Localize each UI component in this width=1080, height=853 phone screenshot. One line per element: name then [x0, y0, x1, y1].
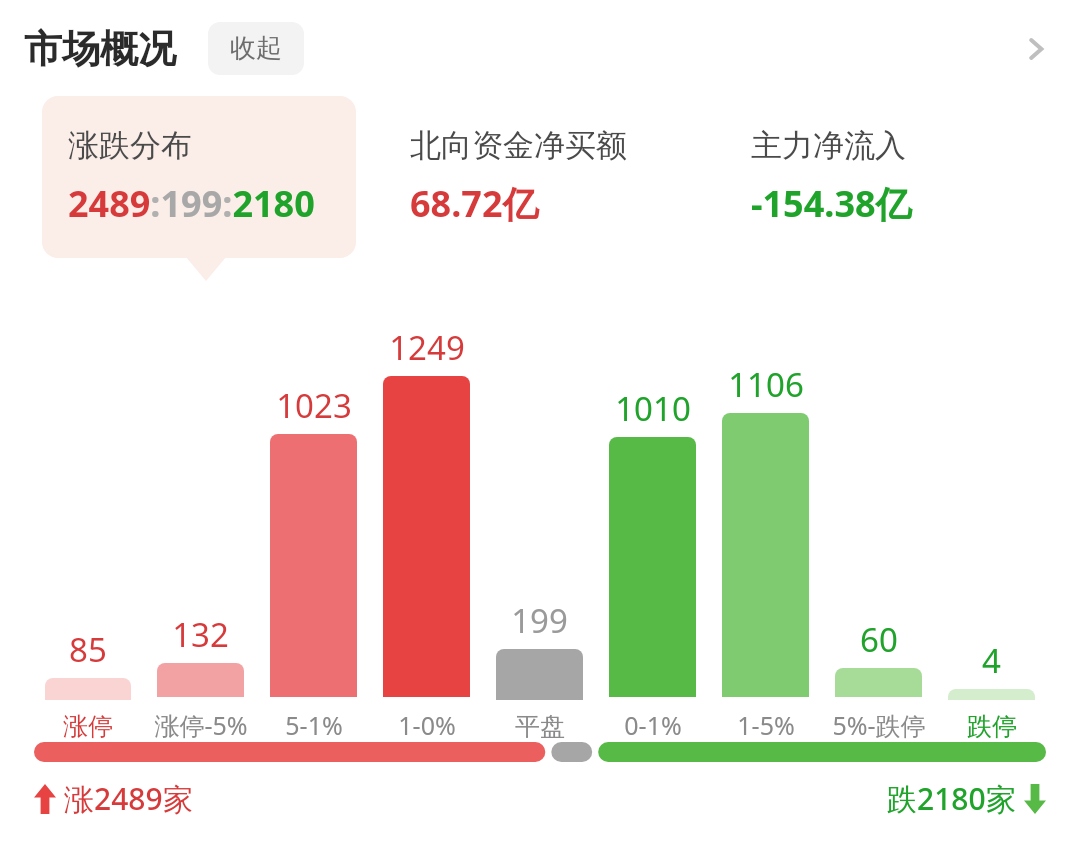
staticText: 跌停	[967, 711, 1017, 742]
button[interactable]: 60	[824, 302, 933, 742]
button[interactable]: 主力净流入	[725, 96, 1038, 258]
staticText: 1-0%	[398, 708, 456, 742]
button[interactable]: 1106	[711, 302, 820, 742]
staticText: 北向资金净买额	[410, 126, 627, 165]
button[interactable]	[34, 742, 1046, 762]
button[interactable]: 1023	[259, 302, 368, 742]
staticText: 收起	[230, 32, 282, 65]
staticText: 2489:199:2180	[68, 179, 315, 228]
staticText: 132	[172, 612, 229, 657]
staticText: 平盘	[515, 711, 565, 742]
button[interactable]: 涨2489家	[34, 778, 193, 819]
staticText: -154.38亿	[751, 179, 912, 228]
staticText: 4	[982, 638, 1001, 683]
staticText: 主力净流入	[751, 126, 906, 165]
button[interactable]: 北向资金净买额	[384, 96, 697, 258]
staticText: 5-1%	[285, 708, 343, 742]
staticText: 1106	[728, 362, 804, 407]
staticText: 60	[860, 617, 898, 662]
button[interactable]: 1010	[598, 302, 707, 742]
button[interactable]: 85	[34, 302, 142, 742]
button[interactable]: 199	[485, 302, 594, 742]
staticText: 1249	[389, 325, 465, 370]
button[interactable]: 跌2180家	[887, 778, 1046, 819]
staticText: 涨跌分布	[68, 126, 192, 165]
staticText: 68.72亿	[410, 179, 539, 228]
button[interactable]: 涨跌分布	[42, 96, 356, 258]
staticText: 1010	[615, 386, 691, 431]
staticText: 跌2180家	[887, 778, 1016, 819]
staticText: 涨2489家	[64, 778, 193, 819]
staticText: 涨停-5%	[154, 708, 248, 742]
staticText: 5%-跌停	[832, 708, 926, 742]
button[interactable]: 4	[937, 302, 1046, 742]
staticText: 85	[69, 627, 107, 672]
staticText: 1-5%	[737, 708, 795, 742]
staticText: 199	[511, 598, 568, 643]
staticText: 1023	[276, 383, 352, 428]
button[interactable]: More	[1012, 25, 1060, 73]
staticText: 市场概况	[24, 25, 176, 73]
staticText: 0-1%	[624, 708, 682, 742]
staticText: 涨停	[63, 711, 113, 742]
button[interactable]: 1249	[372, 302, 481, 742]
button[interactable]: 132	[146, 302, 255, 742]
button[interactable]: 收起	[208, 22, 304, 75]
